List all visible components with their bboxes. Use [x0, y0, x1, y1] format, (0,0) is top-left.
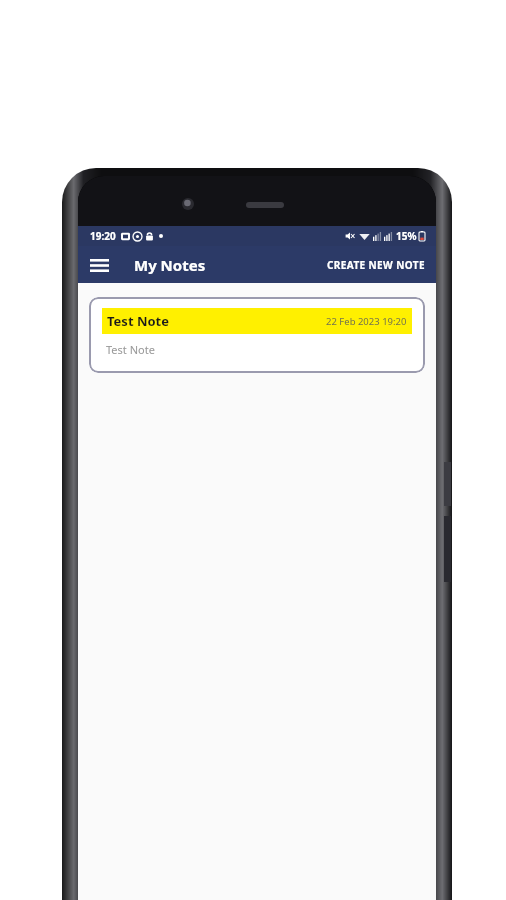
staticText: Test Note: [106, 342, 155, 357]
staticText: 15%: [396, 229, 417, 243]
button[interactable]: CREATE NEW NOTE: [319, 252, 433, 278]
button[interactable]: Test Note: [89, 297, 425, 373]
button[interactable]: Open navigation menu: [84, 250, 114, 280]
staticText: 22 Feb 2023 19:20: [326, 315, 407, 328]
staticText: CREATE NEW NOTE: [327, 258, 425, 272]
staticText: Test Note: [107, 312, 169, 330]
staticText: 19:20: [90, 229, 116, 243]
staticText: My Notes: [134, 255, 206, 275]
